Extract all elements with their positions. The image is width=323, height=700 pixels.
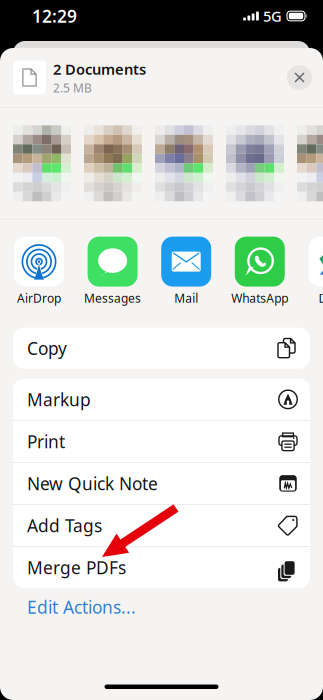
staticText: AirDrop <box>17 290 61 306</box>
button[interactable]: Messages <box>82 237 144 304</box>
staticText: Merge PDFs <box>27 556 126 579</box>
button[interactable]: Merge PDFs <box>13 547 310 588</box>
staticText: Mail <box>174 290 198 306</box>
button[interactable]: Edit Actions... <box>13 588 310 626</box>
staticText: Add Tags <box>27 514 102 537</box>
staticText: 5G <box>263 6 282 26</box>
button[interactable]: Markup <box>13 379 310 420</box>
staticText: Markup <box>27 388 91 411</box>
staticText: WhatsApp <box>231 290 288 306</box>
staticText: New Quick Note <box>27 472 158 495</box>
button[interactable]: Mail <box>155 237 217 304</box>
button[interactable]: Add Tags <box>13 505 310 546</box>
staticText: 2 Documents <box>53 59 146 79</box>
button[interactable]: Close <box>287 65 312 90</box>
button[interactable]: AirDrop <box>8 237 70 304</box>
button[interactable]: Print <box>13 421 310 462</box>
staticText: 2.5 MB <box>53 80 92 96</box>
staticText: Print <box>27 430 65 453</box>
staticText: Copy <box>27 337 67 360</box>
button[interactable]: WhatsApp <box>229 237 291 304</box>
button[interactable]: New Quick Note <box>13 463 310 504</box>
staticText: Messages <box>84 290 141 306</box>
button[interactable]: Drive <box>302 237 323 304</box>
button[interactable]: Copy <box>13 328 310 369</box>
staticText: Drive <box>318 290 323 306</box>
staticText: 12:29 <box>32 4 77 27</box>
staticText: Edit Actions... <box>27 595 136 618</box>
